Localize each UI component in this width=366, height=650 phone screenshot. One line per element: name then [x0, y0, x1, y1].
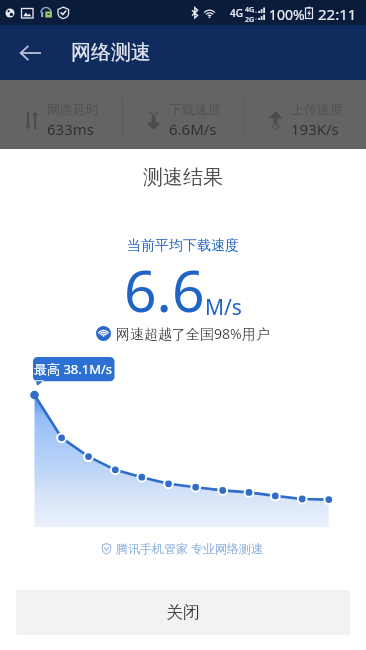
button[interactable]: 腾讯手机管家 专业网络测速: [0, 540, 366, 556]
staticText: 2G: [245, 15, 255, 25]
staticText: 6.6: [124, 251, 205, 329]
staticText: 22:11: [318, 4, 357, 24]
staticText: 关闭: [166, 602, 200, 623]
staticText: 测速结果: [0, 165, 366, 190]
staticText: 腾讯手机管家 专业网络测速: [116, 540, 264, 556]
staticText: 网络测速: [71, 40, 151, 65]
staticText: 上传速度: [291, 101, 343, 117]
staticText: M/s: [205, 293, 242, 322]
button[interactable]: 网路延时: [0, 96, 122, 134]
staticText: 6.6M/s: [169, 119, 217, 139]
staticText: 193K/s: [291, 119, 339, 139]
staticText: 最高 38.1M/s: [34, 360, 113, 378]
staticText: 网速超越了全国98%用户: [116, 324, 270, 343]
button[interactable]: 关闭: [16, 590, 350, 635]
button[interactable]: 上传速度: [245, 96, 366, 134]
button[interactable]: Back: [0, 25, 56, 80]
staticText: 下载速度: [169, 101, 221, 117]
staticText: 4G: [245, 5, 255, 15]
staticText: 633ms: [47, 119, 94, 139]
staticText: 100%: [269, 5, 305, 24]
staticText: 当前平均下载速度: [0, 237, 366, 255]
staticText: 网路延时: [47, 101, 99, 117]
button[interactable]: 下载速度: [123, 96, 244, 134]
staticText: 4G: [230, 6, 243, 20]
